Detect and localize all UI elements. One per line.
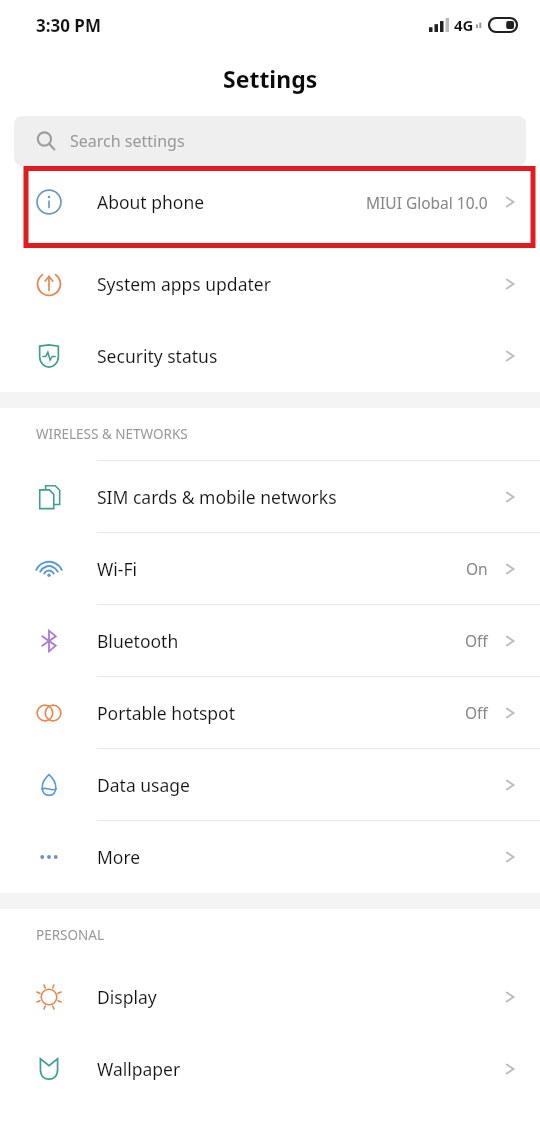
button[interactable]: Bluetooth <box>0 605 540 677</box>
staticText: 3:30 PM <box>36 14 101 37</box>
staticText: Display <box>97 985 157 1009</box>
button[interactable]: System apps updater <box>0 248 540 320</box>
staticText: Data usage <box>97 773 190 797</box>
staticText: SIM cards & mobile networks <box>97 485 337 509</box>
staticText: More <box>97 845 141 869</box>
button[interactable]: Wi-Fi <box>0 533 540 605</box>
staticText: Portable hotspot <box>97 701 236 725</box>
button[interactable]: Security status <box>0 320 540 392</box>
staticText: PERSONAL <box>36 926 104 944</box>
button[interactable]: Portable hotspot <box>0 677 540 749</box>
staticText: WIRELESS & NETWORKS <box>36 425 188 443</box>
staticText: Wallpaper <box>97 1057 181 1081</box>
staticText: Bluetooth <box>97 629 179 653</box>
staticText: 4G <box>454 15 474 35</box>
button[interactable]: Data usage <box>0 749 540 821</box>
staticText: Settings <box>223 63 318 94</box>
button[interactable]: Search settings <box>14 116 526 166</box>
staticText: MIUI Global 10.0 <box>366 192 488 213</box>
button[interactable]: About phone <box>0 166 540 238</box>
button[interactable]: SIM cards & mobile networks <box>0 461 540 533</box>
staticText: Search settings <box>70 130 185 152</box>
staticText: About phone <box>97 190 205 214</box>
button[interactable]: Display <box>0 961 540 1033</box>
staticText: Security status <box>97 344 218 368</box>
staticText: System apps updater <box>97 272 271 296</box>
staticText: Off <box>465 702 488 723</box>
staticText: Wi-Fi <box>97 557 138 581</box>
button[interactable]: Wallpaper <box>0 1033 540 1105</box>
staticText: On <box>466 558 488 579</box>
button[interactable]: More <box>0 821 540 893</box>
staticText: Off <box>465 630 488 651</box>
